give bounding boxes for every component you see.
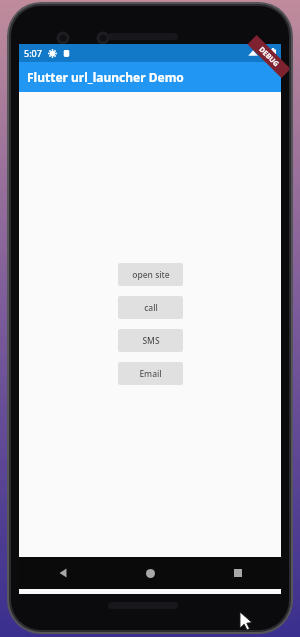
button[interactable]: Email (118, 362, 183, 385)
staticText: 5:07 (24, 47, 42, 59)
button[interactable]: SMS (118, 329, 183, 352)
staticText: Flutter url_launcher Demo (27, 69, 184, 85)
staticText: DEBUG (257, 45, 281, 69)
button[interactable]: Recent apps (194, 557, 281, 589)
staticText: open site (132, 269, 170, 281)
button[interactable]: call (118, 296, 183, 319)
button[interactable]: Home (107, 557, 194, 589)
staticText: Email (139, 368, 162, 380)
button[interactable]: Back (19, 557, 107, 589)
staticText: call (144, 302, 158, 314)
staticText: SMS (142, 335, 160, 347)
button[interactable]: open site (118, 263, 183, 286)
